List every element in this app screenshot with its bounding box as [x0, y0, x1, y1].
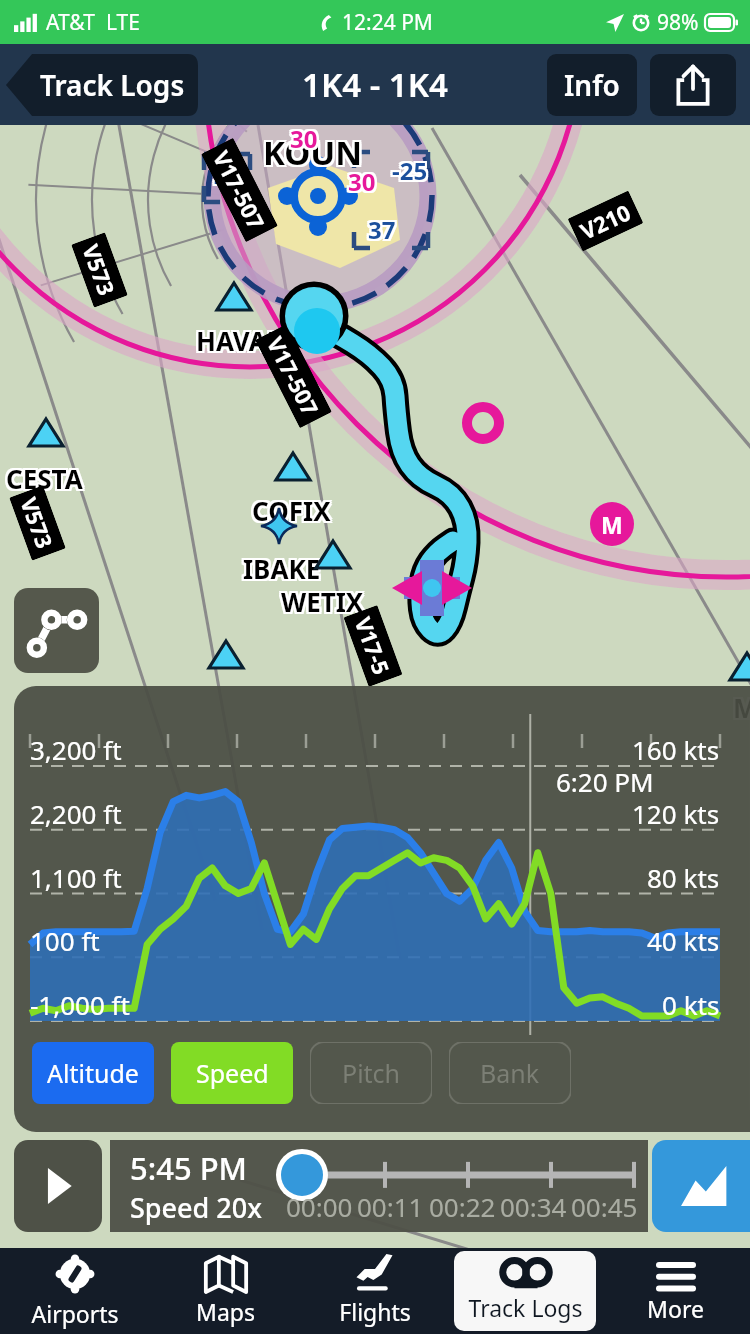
button[interactable]: 5:45 PM — [110, 1140, 648, 1232]
staticText: 30 — [290, 122, 318, 155]
staticText: -25 — [390, 152, 426, 185]
staticText: WETIX — [279, 584, 362, 619]
staticText: 30 — [346, 165, 374, 198]
staticText: CESTA — [6, 463, 83, 498]
staticText: IBAKE — [241, 551, 319, 586]
staticText: 6:20 PM — [556, 764, 654, 799]
staticText: CESTA — [4, 463, 81, 498]
staticText: CESTA — [4, 459, 81, 494]
staticText: COFIX — [254, 493, 333, 528]
staticText: -25 — [214, 163, 250, 196]
staticText: IBAKE — [245, 549, 323, 584]
staticText: KOUN — [263, 130, 363, 175]
staticText: 37 — [366, 211, 394, 244]
staticText: -25 — [392, 154, 428, 187]
staticText: CESTA — [6, 461, 83, 496]
staticText: KOUN — [261, 132, 361, 177]
staticText: 30 — [346, 167, 374, 200]
staticText: COFIX — [252, 491, 331, 526]
button[interactable]: Info — [547, 54, 637, 116]
button[interactable]: Flights — [304, 1251, 446, 1331]
staticText: KOUN — [263, 132, 363, 177]
staticText: HAVAK — [194, 325, 282, 360]
button[interactable]: Play — [14, 1140, 102, 1232]
staticText: Info — [564, 66, 620, 104]
button[interactable]: Pitch — [310, 1042, 432, 1104]
staticText: 37 — [370, 213, 398, 246]
button[interactable]: Track Logs — [454, 1251, 596, 1331]
staticText: IBAKE — [241, 549, 319, 584]
staticText: 1,100 ft — [30, 860, 122, 895]
staticText: HAVAK — [198, 321, 286, 356]
staticText: 30 — [288, 122, 316, 155]
staticText: HAVAK — [196, 323, 284, 358]
staticText: WETIX — [283, 584, 366, 619]
staticText: M — [731, 688, 750, 723]
staticText: -25 — [394, 152, 430, 185]
staticText: KOUN — [265, 128, 365, 173]
staticText: COFIX — [250, 493, 329, 528]
staticText: -25 — [216, 163, 252, 196]
staticText: Airports — [31, 1298, 119, 1329]
button[interactable]: Share — [650, 54, 736, 116]
staticText: KOUN — [261, 128, 361, 173]
staticText: -25 — [214, 161, 250, 194]
button[interactable]: Maps — [154, 1251, 296, 1331]
staticText: V573 — [76, 240, 123, 300]
staticText: Speed — [196, 1056, 269, 1090]
staticText: HAVAK — [198, 323, 286, 358]
staticText: 30 — [348, 167, 376, 200]
staticText: 30 — [350, 167, 378, 200]
staticText: Maps — [196, 1296, 255, 1327]
staticText: 0 kts — [662, 987, 720, 1022]
staticText: COFIX — [250, 495, 329, 530]
button[interactable]: Speed — [171, 1042, 293, 1104]
button[interactable]: Route overview — [14, 588, 99, 673]
staticText: IBAKE — [243, 549, 321, 584]
staticText: 98% — [657, 8, 699, 37]
staticText: IBAKE — [243, 553, 321, 588]
button[interactable]: Airports — [4, 1251, 146, 1331]
staticText: COFIX — [252, 493, 331, 528]
staticText: Track Logs — [468, 1292, 583, 1323]
staticText: -25 — [212, 163, 248, 196]
staticText: 3,200 ft — [30, 732, 122, 767]
staticText: V17-507 — [261, 331, 326, 421]
staticText: M — [735, 690, 750, 725]
staticText: IBAKE — [241, 553, 319, 588]
staticText: V17-5 — [349, 613, 397, 679]
staticText: LTE — [106, 8, 140, 37]
button[interactable]: Track Logs — [6, 54, 198, 116]
button[interactable]: More — [604, 1251, 746, 1331]
staticText: 00:11 — [357, 1189, 424, 1224]
staticText: IBAKE — [245, 553, 323, 588]
staticText: M — [733, 690, 750, 725]
staticText: M — [735, 688, 750, 723]
staticText: Flights — [339, 1296, 411, 1327]
button[interactable]: Show chart — [652, 1140, 750, 1232]
staticText: M — [731, 692, 750, 727]
staticText: COFIX — [250, 491, 329, 526]
staticText: Altitude — [47, 1056, 139, 1090]
staticText: -25 — [390, 154, 426, 187]
staticText: WETIX — [283, 582, 366, 617]
staticText: 30 — [292, 124, 320, 157]
staticText: 2,200 ft — [30, 796, 122, 831]
staticText: 00:22 — [429, 1189, 496, 1224]
staticText: WETIX — [281, 584, 364, 619]
staticText: M — [733, 692, 750, 727]
button[interactable]: Bank — [449, 1042, 571, 1104]
staticText: WETIX — [281, 582, 364, 617]
staticText: 37 — [366, 213, 394, 246]
staticText: CESTA — [8, 461, 85, 496]
staticText: Track Logs — [40, 66, 185, 104]
staticText: COFIX — [254, 495, 333, 530]
staticText: HAVAK — [196, 323, 284, 358]
staticText: WETIX — [279, 586, 362, 621]
staticText: More — [647, 1293, 704, 1324]
staticText: WETIX — [281, 584, 364, 619]
staticText: 30 — [348, 165, 376, 198]
staticText: COFIX — [254, 491, 333, 526]
button[interactable]: Altitude — [32, 1042, 154, 1104]
staticText: 30 — [290, 124, 318, 157]
